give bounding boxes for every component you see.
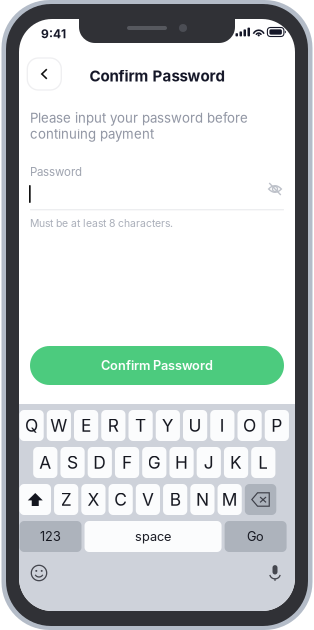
button[interactable]: D <box>88 447 112 478</box>
staticText: C <box>114 489 127 510</box>
button[interactable]: Q <box>19 410 44 441</box>
button[interactable]: S <box>60 447 85 478</box>
staticText: E <box>81 415 91 436</box>
staticText: N <box>196 489 209 510</box>
staticText: P <box>271 415 282 436</box>
staticText: K <box>230 452 242 473</box>
button[interactable]: L <box>251 447 275 478</box>
button[interactable]: O <box>237 410 262 441</box>
staticText: R <box>108 415 119 436</box>
button[interactable]: A <box>33 447 57 478</box>
button[interactable]: E <box>74 410 98 441</box>
button[interactable]: Emoji <box>27 561 51 585</box>
staticText: B <box>170 489 181 510</box>
button[interactable]: Delete <box>245 484 276 515</box>
staticText: D <box>93 452 106 473</box>
staticText: T <box>135 415 146 436</box>
button[interactable]: B <box>163 484 187 515</box>
button[interactable]: X <box>81 484 105 515</box>
staticText: Confirm Password <box>89 67 224 85</box>
staticText: Z <box>61 489 72 510</box>
staticText: H <box>175 452 188 473</box>
staticText: 9:41 <box>41 26 66 41</box>
button[interactable]: Confirm Password <box>30 346 284 385</box>
staticText: Please input your password before contin… <box>30 110 248 142</box>
button[interactable]: Z <box>54 484 78 515</box>
button[interactable]: H <box>169 447 194 478</box>
staticText: J <box>204 452 214 473</box>
button[interactable]: J <box>197 447 221 478</box>
button[interactable]: Shift <box>19 484 51 515</box>
staticText: Confirm Password <box>101 358 213 373</box>
button[interactable]: F <box>115 447 139 478</box>
button[interactable]: Y <box>156 410 180 441</box>
staticText: 123 <box>40 529 61 544</box>
staticText: W <box>50 415 67 436</box>
button[interactable]: R <box>101 410 125 441</box>
button[interactable]: Go <box>225 521 287 552</box>
staticText: space <box>135 529 171 544</box>
staticText: V <box>142 489 154 510</box>
staticText: Q <box>25 415 38 436</box>
button[interactable]: M <box>218 484 242 515</box>
staticText: Go <box>247 529 264 544</box>
button[interactable]: G <box>142 447 166 478</box>
staticText: G <box>148 452 161 473</box>
button[interactable]: Dictation <box>263 561 287 585</box>
staticText: A <box>39 452 51 473</box>
button[interactable]: Show password <box>264 178 286 200</box>
button[interactable]: W <box>47 410 71 441</box>
staticText: M <box>222 489 238 510</box>
staticText: O <box>243 415 256 436</box>
staticText: Y <box>162 415 174 436</box>
button[interactable]: I <box>210 410 234 441</box>
staticText: U <box>189 415 202 436</box>
button[interactable]: P <box>265 410 289 441</box>
button[interactable]: N <box>190 484 214 515</box>
button[interactable]: space <box>84 521 221 552</box>
staticText: Must be at least 8 characters. <box>30 217 173 230</box>
staticText: S <box>67 452 78 473</box>
staticText: Password <box>30 165 82 179</box>
staticText: X <box>87 489 99 510</box>
button[interactable]: V <box>136 484 160 515</box>
button[interactable]: Back <box>27 58 61 90</box>
button[interactable]: T <box>128 410 153 441</box>
button[interactable]: K <box>224 447 248 478</box>
staticText: I <box>220 415 225 436</box>
staticText: L <box>258 452 268 473</box>
button[interactable]: 123 <box>19 521 81 552</box>
button[interactable]: U <box>183 410 207 441</box>
button[interactable]: C <box>108 484 133 515</box>
staticText: F <box>122 452 132 473</box>
